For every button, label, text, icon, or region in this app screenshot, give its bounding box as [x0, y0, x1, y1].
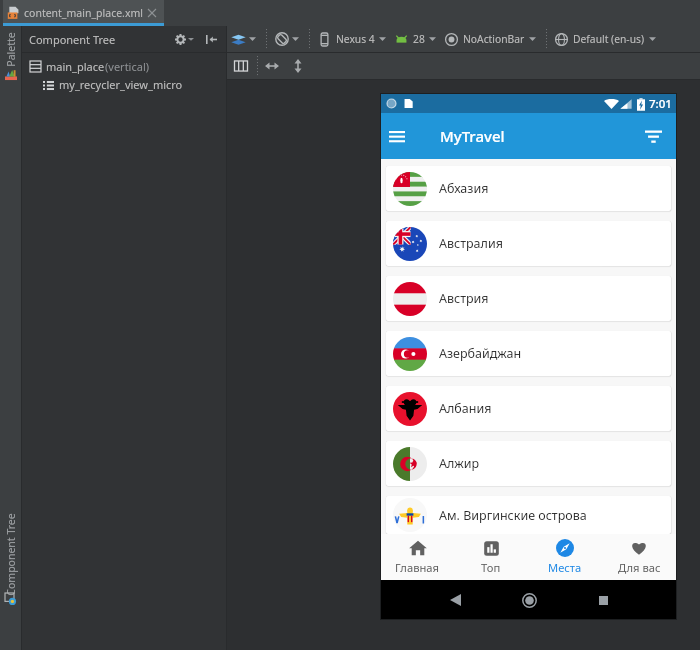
button[interactable]: Collapse all	[203, 31, 219, 47]
button[interactable]: Для вас	[602, 534, 676, 580]
staticText: NoActionBar	[463, 32, 525, 46]
button[interactable]: NoActionBar	[445, 28, 536, 50]
staticText: Для вас	[618, 560, 661, 575]
button[interactable]: Width	[262, 56, 282, 76]
button[interactable]: Алжир	[386, 441, 671, 486]
button[interactable]: Blueprint mode	[231, 56, 251, 76]
staticText: Component Tree	[29, 32, 116, 47]
button[interactable]: Ам. Виргинские острова	[386, 496, 671, 534]
button[interactable]: Абхазия	[386, 166, 671, 211]
button[interactable]: Back	[437, 582, 473, 618]
button[interactable]: Австралия	[386, 221, 671, 266]
staticText: Default (en-us)	[573, 32, 645, 46]
button[interactable]: Orientation	[275, 28, 299, 50]
button[interactable]: Места	[528, 534, 602, 580]
staticText: content_main_place.xml	[24, 6, 144, 20]
button[interactable]: Filter list	[630, 113, 676, 159]
staticText: Азербайджан	[439, 345, 522, 362]
staticText: main_place	[46, 59, 105, 74]
staticText: Nexus 4	[336, 32, 375, 46]
staticText: Palette	[4, 26, 18, 73]
button[interactable]: Open navigation drawer	[381, 113, 412, 159]
staticText: Австрия	[439, 290, 489, 307]
button[interactable]: Nexus 4	[318, 28, 386, 50]
staticText: Алжир	[439, 455, 480, 472]
staticText: Ам. Виргинские острова	[439, 507, 587, 524]
button[interactable]: Height	[288, 56, 308, 76]
button[interactable]: Албания	[386, 386, 671, 431]
button[interactable]: Азербайджан	[386, 331, 671, 376]
button[interactable]: Home	[511, 582, 547, 618]
button[interactable]: content_main_place.xml	[3, 0, 164, 26]
staticText: Места	[548, 560, 582, 575]
button[interactable]: my_recycler_view_micro	[22, 75, 226, 93]
button[interactable]: Recent apps	[585, 582, 621, 618]
button[interactable]: Топ	[454, 534, 528, 580]
staticText: Топ	[481, 560, 501, 575]
button[interactable]: Design mode	[231, 28, 256, 50]
staticText: Component Tree	[4, 513, 18, 596]
staticText: Абхазия	[439, 180, 489, 197]
button[interactable]: Главная	[381, 534, 454, 580]
staticText: (vertical)	[105, 59, 150, 74]
staticText: 7:01	[649, 96, 672, 112]
staticText: Австралия	[439, 235, 503, 252]
button[interactable]: Close tab	[148, 9, 156, 17]
button[interactable]: main_place	[22, 57, 226, 75]
button[interactable]: Default (en-us)	[555, 28, 656, 50]
button[interactable]: Австрия	[386, 276, 671, 321]
staticText: my_recycler_view_micro	[59, 77, 183, 92]
button[interactable]: Tree options	[175, 30, 194, 48]
staticText: Главная	[395, 560, 440, 575]
staticText: Албания	[439, 400, 492, 417]
button[interactable]: 28	[395, 28, 436, 50]
staticText: 28	[413, 32, 425, 46]
staticText: MyTravel	[440, 126, 505, 146]
